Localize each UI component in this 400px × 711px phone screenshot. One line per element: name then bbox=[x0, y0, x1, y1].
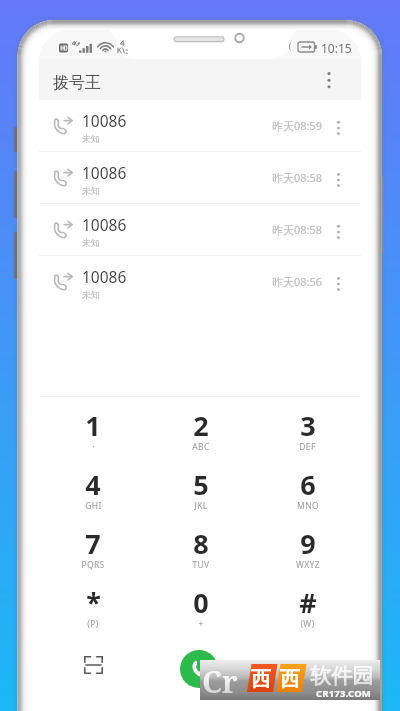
staticText: 昨天08:58 bbox=[272, 170, 323, 185]
button[interactable]: Call bbox=[180, 650, 218, 688]
button[interactable]: # bbox=[254, 574, 361, 633]
button[interactable]: More options bbox=[311, 62, 346, 97]
staticText: 0 bbox=[193, 584, 209, 621]
staticText: (P) bbox=[87, 618, 99, 630]
staticText: 6 bbox=[300, 466, 316, 503]
staticText: Cr bbox=[202, 661, 238, 701]
staticText: 未知 bbox=[82, 185, 100, 196]
button[interactable]: 6 bbox=[254, 456, 361, 515]
button[interactable]: 1 bbox=[39, 397, 147, 456]
staticText: 9 bbox=[300, 525, 316, 562]
staticText: PQRS bbox=[81, 559, 105, 571]
staticText: 8 bbox=[193, 525, 209, 562]
button[interactable]: 2 bbox=[147, 397, 254, 456]
staticText: 5 bbox=[193, 466, 209, 503]
staticText: 未知 bbox=[82, 133, 100, 144]
staticText: DEF bbox=[299, 441, 316, 453]
staticText: 3 bbox=[300, 407, 316, 444]
button[interactable]: 10086 bbox=[39, 256, 361, 307]
staticText: WXYZ bbox=[296, 559, 320, 571]
button[interactable]: 4 bbox=[39, 456, 147, 515]
staticText: 10:15 bbox=[321, 40, 352, 53]
button[interactable]: Call options bbox=[324, 214, 352, 249]
staticText: 2 bbox=[193, 407, 209, 444]
staticText: 昨天08:58 bbox=[272, 222, 323, 237]
staticText: 未知 bbox=[82, 289, 100, 300]
button[interactable]: 5 bbox=[147, 456, 254, 515]
staticText: 软件园 bbox=[310, 663, 373, 689]
staticText: · bbox=[92, 441, 95, 453]
button[interactable]: 8 bbox=[147, 515, 254, 574]
button[interactable]: Scan bbox=[67, 641, 119, 689]
button[interactable]: 10086 bbox=[39, 204, 361, 255]
staticText: 昨天08:56 bbox=[272, 274, 323, 289]
staticText: GHI bbox=[85, 500, 102, 512]
staticText: + bbox=[198, 618, 204, 630]
staticText: MNO bbox=[297, 500, 319, 512]
staticText: 10086 bbox=[82, 110, 127, 131]
staticText: # bbox=[299, 584, 317, 621]
staticText: JKL bbox=[194, 500, 208, 512]
staticText: 4 bbox=[85, 466, 101, 503]
staticText: 西 bbox=[251, 667, 271, 692]
staticText: ABC bbox=[192, 441, 210, 453]
staticText: 1 bbox=[85, 407, 101, 444]
button[interactable]: Call options bbox=[324, 266, 352, 301]
staticText: 西 bbox=[280, 667, 300, 692]
button[interactable]: Call options bbox=[324, 162, 352, 197]
staticText: 10086 bbox=[82, 214, 127, 235]
staticText: 拨号王 bbox=[53, 73, 101, 93]
button[interactable]: * bbox=[39, 574, 147, 633]
staticText: 昨天08:59 bbox=[272, 118, 323, 133]
staticText: TUV bbox=[192, 559, 210, 571]
staticText: 7 bbox=[85, 525, 101, 562]
button[interactable]: 0 bbox=[147, 574, 254, 633]
button[interactable]: 10086 bbox=[39, 100, 361, 151]
staticText: 未知 bbox=[82, 237, 100, 248]
button[interactable]: 7 bbox=[39, 515, 147, 574]
staticText: 10086 bbox=[82, 266, 127, 287]
staticText: * bbox=[86, 584, 101, 621]
staticText: 10086 bbox=[82, 162, 127, 183]
button[interactable]: Call options bbox=[324, 110, 352, 145]
button[interactable]: 10086 bbox=[39, 152, 361, 203]
button[interactable]: 3 bbox=[254, 397, 361, 456]
button[interactable]: 9 bbox=[254, 515, 361, 574]
staticText: (W) bbox=[300, 618, 315, 630]
staticText: CR173.COM bbox=[316, 687, 372, 700]
